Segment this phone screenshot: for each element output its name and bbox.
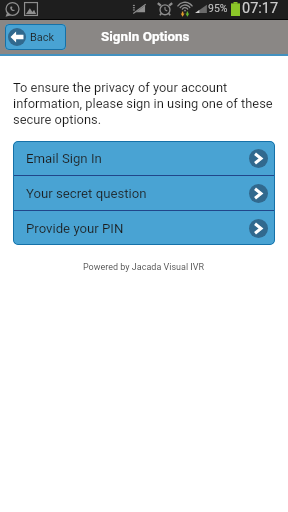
staticText: SignIn Options <box>101 29 190 45</box>
staticText: To ensure the privacy of your account in… <box>13 80 277 127</box>
button[interactable]: Email Sign In <box>13 141 275 175</box>
staticText: Email Sign In <box>26 151 102 166</box>
staticText: 07:17 <box>242 0 279 17</box>
staticText: Powered by Jacada Visual IVR <box>83 262 205 273</box>
staticText: Provide your PIN <box>26 221 124 236</box>
button[interactable]: Back <box>5 24 66 50</box>
staticText: 95% <box>208 2 228 14</box>
button[interactable]: Your secret question <box>13 176 275 210</box>
staticText: Back <box>30 31 55 44</box>
staticText: Your secret question <box>26 186 147 201</box>
button[interactable]: Provide your PIN <box>13 211 275 245</box>
